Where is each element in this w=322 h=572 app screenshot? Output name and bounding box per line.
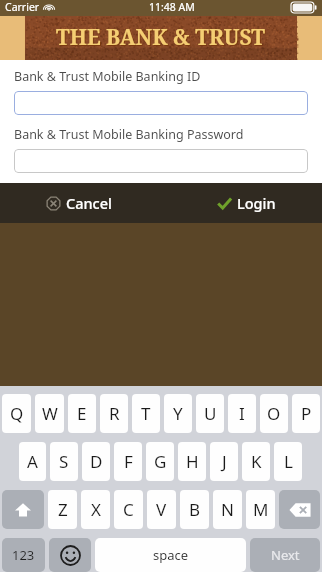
button[interactable]: A (19, 442, 46, 481)
staticText: L (284, 450, 293, 473)
button[interactable] (14, 149, 308, 173)
button[interactable]: Cancel (40, 188, 118, 218)
staticText: F (124, 450, 133, 473)
staticText: Next (271, 546, 300, 564)
button[interactable]: G (146, 442, 174, 481)
staticText: Carrier (5, 0, 40, 14)
button[interactable]: O (260, 394, 288, 433)
button[interactable]: L (274, 442, 302, 481)
staticText: Cancel (66, 193, 112, 213)
button[interactable]: W (35, 394, 64, 433)
staticText: THE BANK & TRUST (57, 24, 266, 53)
staticText: H (186, 450, 199, 473)
staticText: V (156, 498, 167, 521)
button[interactable]: P (292, 394, 320, 433)
staticText: W (42, 402, 58, 425)
button[interactable]: H (178, 442, 206, 481)
button[interactable]: U (196, 394, 224, 433)
staticText: D (90, 450, 103, 473)
staticText: THE BANK & TRUST (56, 23, 265, 52)
button[interactable]: Q (2, 394, 31, 433)
button[interactable]: R (100, 394, 128, 433)
staticText: M (253, 498, 269, 521)
staticText: C (123, 498, 134, 521)
staticText: E (77, 402, 87, 425)
button[interactable]: B (180, 490, 209, 529)
button[interactable]: K (242, 442, 270, 481)
staticText: U (204, 402, 217, 425)
button[interactable]: Shift (2, 490, 44, 529)
button[interactable]: Y (164, 394, 192, 433)
staticText: O (267, 402, 281, 425)
staticText: Q (10, 402, 24, 425)
button[interactable]: D (82, 442, 110, 481)
staticText: space (153, 546, 189, 564)
staticText: T (141, 402, 151, 425)
button[interactable]: X (81, 490, 110, 529)
button[interactable]: E (68, 394, 96, 433)
button[interactable]: I (228, 394, 256, 433)
button[interactable]: N (213, 490, 242, 529)
staticText: B (189, 498, 201, 521)
button[interactable]: J (210, 442, 238, 481)
staticText: A (27, 450, 38, 473)
button[interactable]: Z (48, 490, 77, 529)
staticText: K (251, 450, 262, 473)
staticText: Y (173, 402, 183, 425)
button[interactable]: 123 (2, 538, 45, 572)
button[interactable]: Next (250, 538, 320, 572)
staticText: J (222, 450, 227, 473)
staticText: Bank & Trust Mobile Banking Password (14, 126, 244, 143)
staticText: N (221, 498, 234, 521)
button[interactable]: F (114, 442, 142, 481)
staticText: Bank & Trust Mobile Banking ID (14, 68, 201, 85)
button[interactable] (14, 91, 308, 115)
staticText: P (301, 402, 312, 425)
staticText: Z (58, 498, 68, 521)
button[interactable]: V (147, 490, 176, 529)
button[interactable]: space (95, 538, 246, 572)
staticText: Login (237, 193, 276, 213)
button[interactable]: Emoji (49, 538, 91, 572)
button[interactable]: M (246, 490, 275, 529)
staticText: R (109, 402, 120, 425)
button[interactable]: C (114, 490, 143, 529)
button[interactable]: Backspace (279, 490, 320, 529)
button[interactable]: Login (211, 188, 282, 218)
staticText: G (154, 450, 167, 473)
button[interactable]: S (50, 442, 78, 481)
staticText: 123 (12, 546, 35, 564)
button[interactable]: T (132, 394, 160, 433)
staticText: I (239, 402, 245, 425)
staticText: S (59, 450, 69, 473)
staticText: 11:48 AM (149, 0, 195, 14)
staticText: X (91, 498, 101, 521)
